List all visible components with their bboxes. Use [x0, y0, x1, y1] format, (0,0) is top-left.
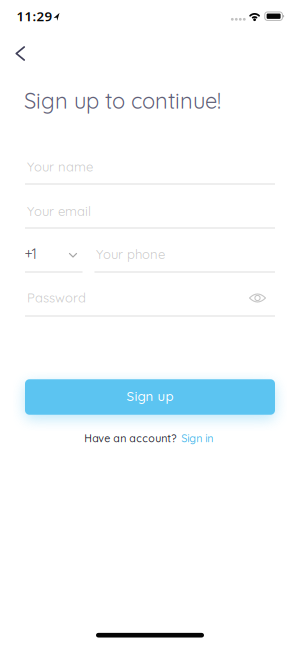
staticText: Sign in	[181, 432, 213, 445]
button[interactable]: Sign in	[181, 432, 213, 445]
staticText: +1	[24, 244, 36, 262]
staticText: Sign up to continue!	[24, 87, 221, 114]
staticText: Your name	[27, 158, 93, 175]
staticText: Your email	[27, 203, 91, 219]
button[interactable]: Back	[7, 38, 37, 68]
button[interactable]: Sign up	[25, 379, 275, 415]
staticText: Password	[27, 289, 86, 306]
button[interactable]: Show password	[245, 288, 269, 308]
staticText: 11:29	[16, 7, 52, 25]
staticText: Your phone	[96, 246, 165, 262]
button[interactable]: Country code +1	[24, 244, 82, 264]
staticText: Have an account?	[84, 432, 176, 445]
staticText: Sign up	[126, 388, 173, 404]
